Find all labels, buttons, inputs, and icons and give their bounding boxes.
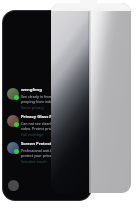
staticText: See clearly in front of [21,94,57,99]
staticText: protect your privacy [21,153,55,158]
staticText: Privacy Glass Film [21,114,59,120]
staticText: Voice: privacy [21,105,44,110]
button[interactable]: wengfeng [3,86,91,113]
staticText: Screen Protector [21,141,56,147]
button[interactable]: Screen Protector [3,140,91,167]
staticText: Sensitive touch [21,159,47,164]
staticText: video. Protect privacy [21,126,58,131]
staticText: peeping from index [21,99,55,104]
staticText: wengfeng [21,87,42,93]
staticText: Can not see clearly from [21,121,62,126]
staticText: Professional anti-fall [21,148,56,153]
staticText: 18m ago [75,116,89,120]
staticText: 18m ago [75,89,89,93]
button[interactable]: Privacy Glass Film [3,113,91,140]
button[interactable]: Profile [8,180,19,191]
staticText: Full coverage [21,132,44,137]
